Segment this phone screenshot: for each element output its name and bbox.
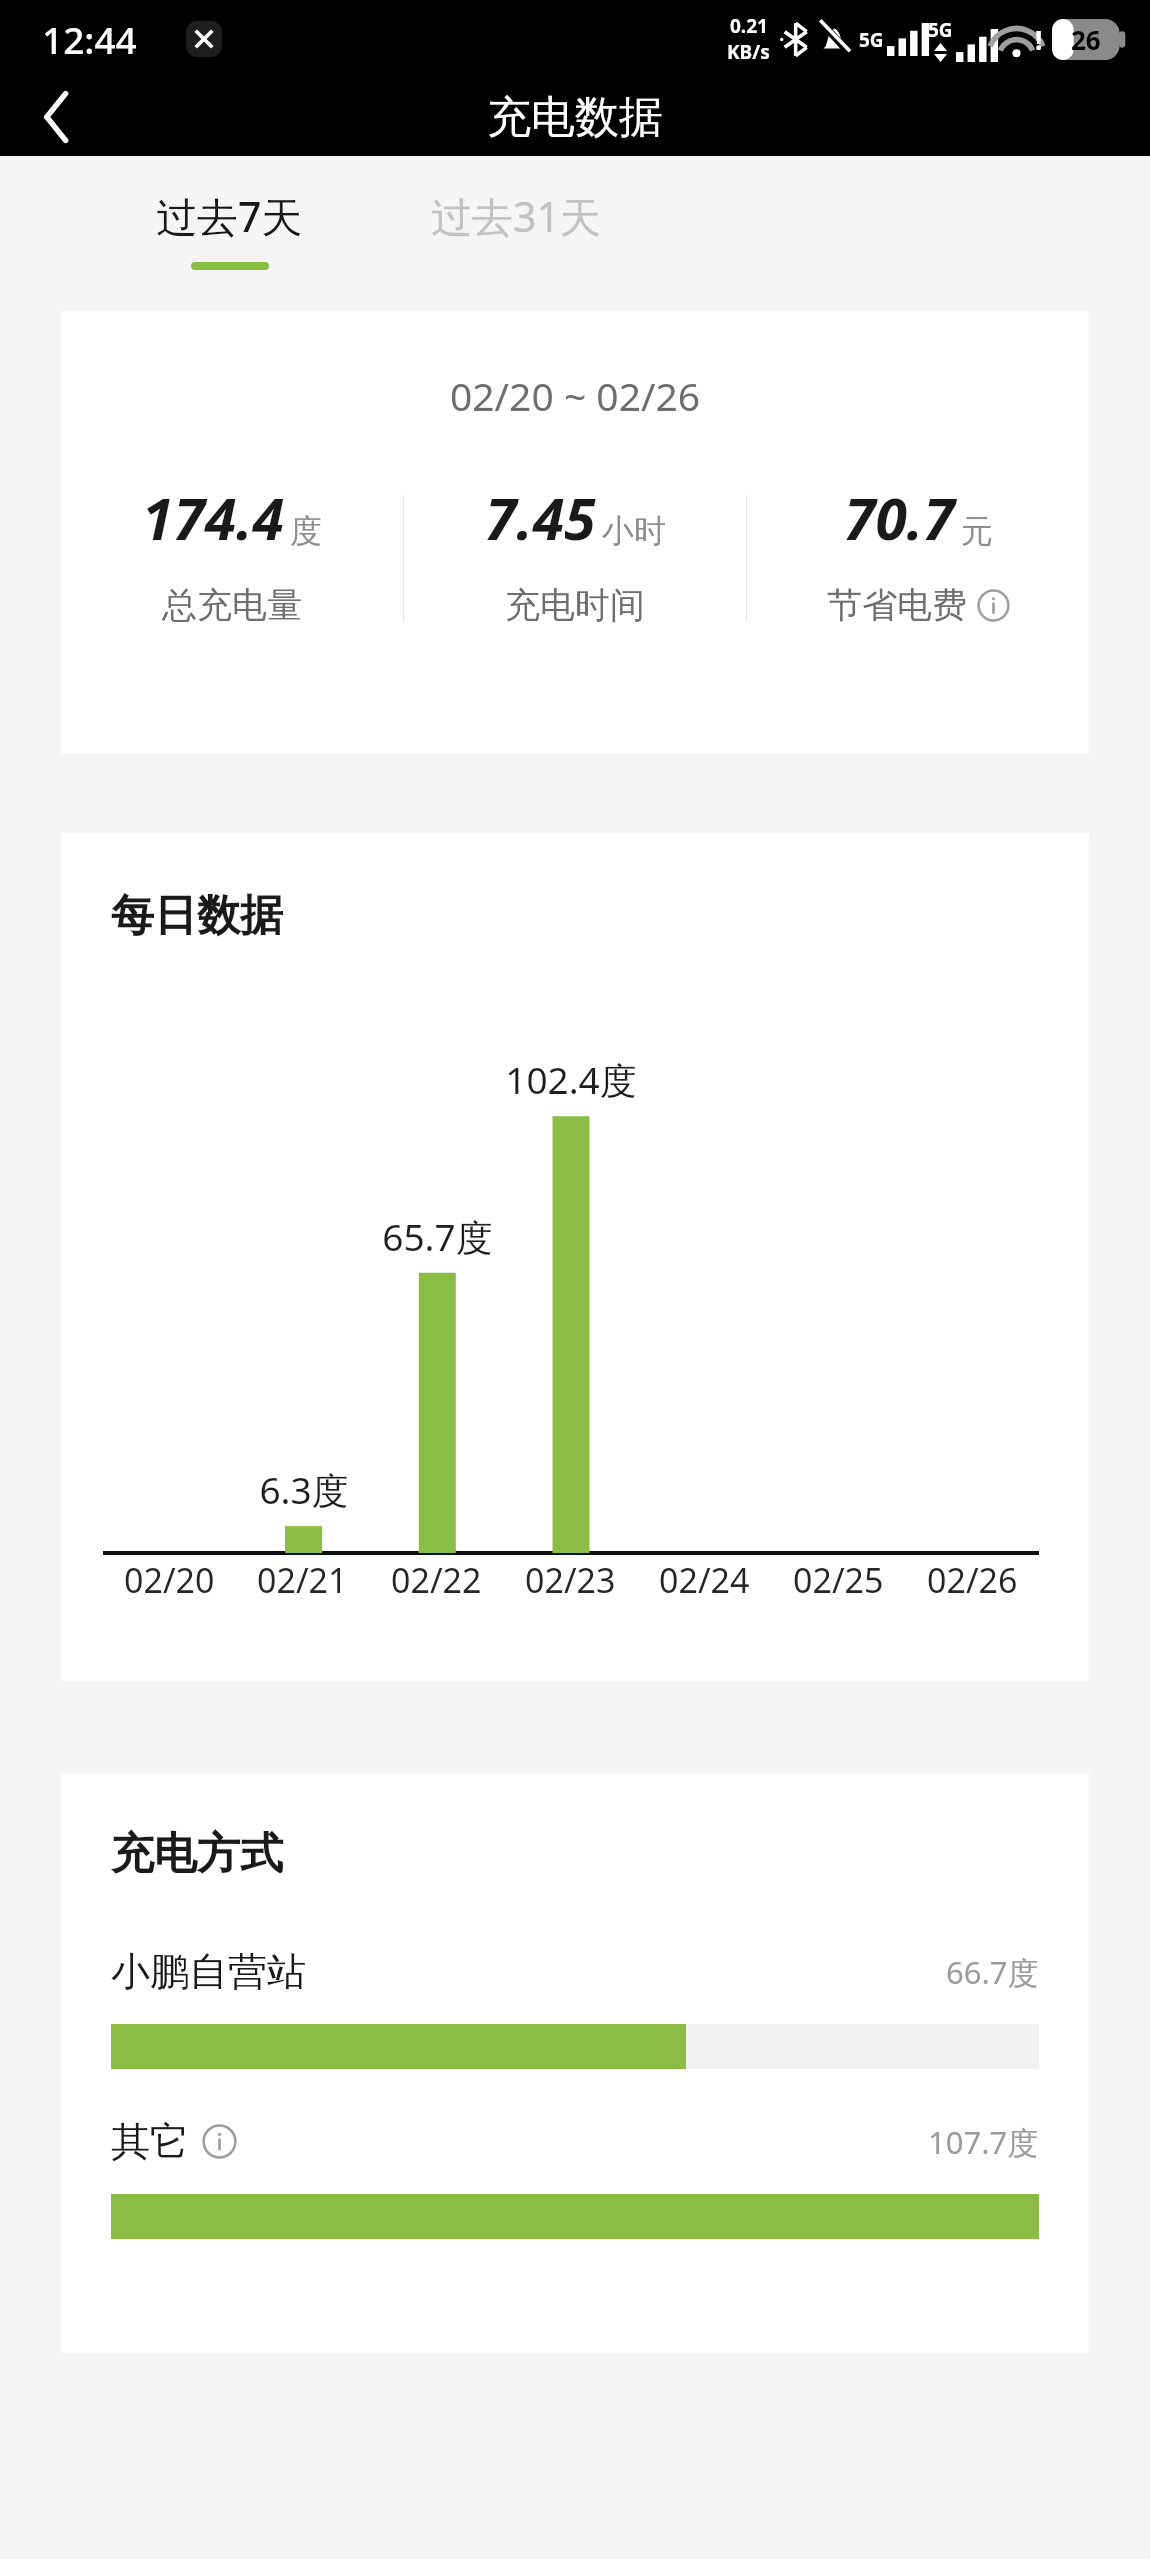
button[interactable]: 小鹏自营站 [111,1947,1039,2069]
staticText: 7.45 [485,479,596,557]
staticText: 每日数据 [111,889,283,943]
staticText: 度 [290,511,322,551]
staticText: 26 [1071,22,1101,57]
other: More information [977,589,1010,622]
staticText: 65.7度 [382,1211,493,1262]
staticText: 02/23 [525,1557,616,1603]
staticText: 02/24 [659,1557,750,1603]
staticText: 充电数据 [487,90,663,145]
staticText: 过去7天 [156,188,303,244]
staticText: 174.4 [142,479,284,557]
staticText: ! [1035,22,1043,57]
staticText: 02/22 [391,1557,482,1603]
button[interactable]: 过去31天 [421,188,611,270]
staticText: 102.4度 [505,1054,637,1105]
staticText: 107.7度 [928,2121,1039,2163]
staticText: 0.21 [730,13,768,39]
staticText: 其它 [111,2117,189,2166]
staticText: 02/21 [257,1557,348,1603]
staticText: 12:44 [42,14,137,64]
staticText: 70.7 [844,479,955,557]
staticText: 02/25 [793,1557,884,1603]
staticText: 66.7度 [946,1951,1039,1993]
staticText: 6.3度 [259,1464,349,1515]
staticText: KB/s [727,39,770,65]
staticText: 02/20 ~ 02/26 [450,369,701,422]
button[interactable]: 过去7天 [146,188,313,270]
staticText: 元 [961,511,993,551]
staticText: 5G [928,17,953,43]
staticText: 总充电量 [162,583,302,627]
other: More information [202,2124,237,2159]
staticText: 小时 [602,511,666,551]
staticText: 5G [859,27,884,53]
staticText: 02/26 [927,1557,1018,1603]
staticText: 充电时间 [505,583,645,627]
staticText: 过去31天 [431,188,601,244]
staticText: 节省电费 [827,583,967,627]
button[interactable]: 其它 [111,2117,1039,2239]
button[interactable]: Back [0,78,112,156]
staticText: 小鹏自营站 [111,1947,306,1996]
staticText: 充电方式 [111,1827,283,1881]
staticText: 02/20 [124,1557,215,1603]
